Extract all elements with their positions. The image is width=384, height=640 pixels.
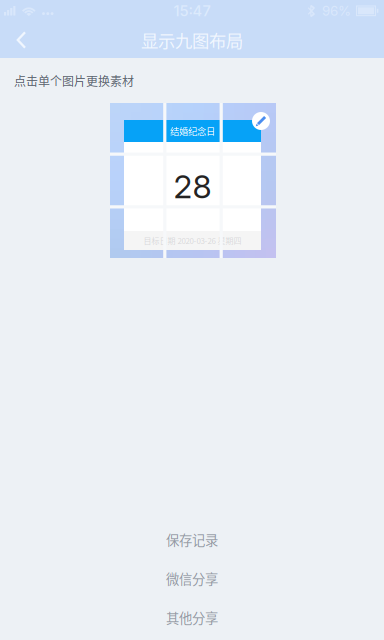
staticText: 15:47: [173, 2, 210, 20]
button[interactable]: 其他分享: [0, 598, 384, 637]
staticText: 96%: [322, 3, 351, 19]
staticText: 点击单个图片更换素材: [14, 72, 134, 89]
staticText: 保存记录: [166, 530, 218, 549]
staticText: 结婚纪念日: [170, 124, 215, 138]
button[interactable]: Edit: [249, 109, 273, 133]
button[interactable]: 微信分享: [0, 559, 384, 598]
button[interactable]: Back: [0, 22, 42, 58]
staticText: 其他分享: [166, 608, 218, 627]
staticText: 显示九图布局: [141, 27, 243, 53]
button[interactable]: 保存记录: [0, 520, 384, 559]
staticText: 微信分享: [166, 569, 218, 588]
staticText: 目标日期 2020-03-26 星期四: [143, 235, 241, 246]
staticText: 28: [173, 167, 211, 206]
